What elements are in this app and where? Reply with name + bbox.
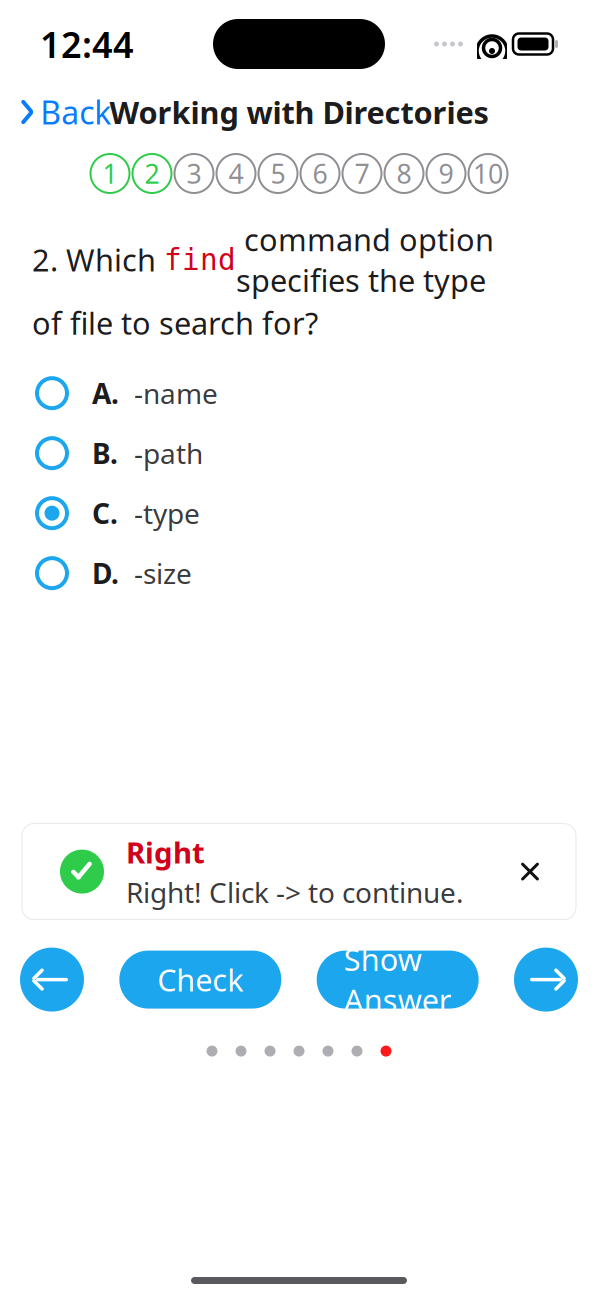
staticText: 3 [186,156,201,191]
staticText: A. [92,375,119,412]
staticText: 8 [396,156,411,191]
button[interactable]: Show Answer [317,951,479,1009]
staticText: Back [40,91,111,133]
staticText: 5 [270,156,285,191]
staticText: Right [126,832,205,871]
staticText: Show Answer [344,939,452,1020]
staticText: -name [134,375,218,412]
button[interactable]: Check [119,951,281,1009]
staticText: 1 [102,156,117,191]
button[interactable]: Back [4,83,127,141]
staticText: B. [92,435,118,472]
button[interactable]: D. [0,543,598,603]
staticText: Check [157,959,243,1000]
button[interactable]: Dismiss feedback [500,842,560,902]
staticText: -size [134,555,192,592]
staticText: 2. Which [32,239,164,280]
staticText: D. [92,555,119,592]
staticText: Right! Click -> to continue. [126,873,464,911]
button[interactable]: C. [0,483,598,543]
staticText: command option specifies the type [236,219,494,300]
staticText: 6 [312,156,327,191]
button[interactable]: B. [0,423,598,483]
staticText: Working with Directories [109,92,488,132]
button[interactable]: Previous question [20,948,84,1012]
staticText: find [164,243,236,276]
staticText: of file to search for? [32,302,318,343]
button[interactable]: A. [0,363,598,423]
button[interactable]: Next question [514,948,578,1012]
staticText: 12:44 [40,20,134,68]
staticText: 7 [354,156,369,191]
staticText: C. [92,495,118,532]
staticText: 4 [228,156,243,191]
staticText: -path [134,435,203,472]
staticText: 9 [438,156,453,191]
staticText: -type [134,495,200,532]
staticText: 2 [144,156,159,191]
staticText: 10 [473,156,503,191]
